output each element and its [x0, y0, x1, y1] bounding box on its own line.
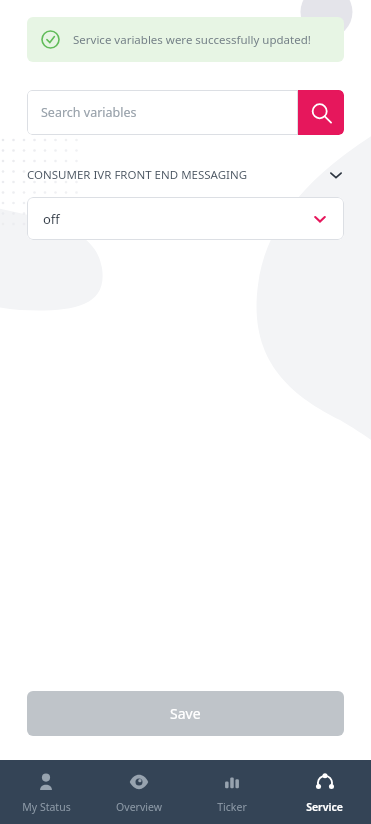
- button[interactable]: Search: [298, 90, 344, 135]
- staticText: Ticker: [217, 800, 247, 814]
- staticText: My Status: [22, 800, 71, 814]
- button[interactable]: Service: [278, 760, 371, 824]
- button[interactable]: My Status: [0, 760, 92, 824]
- staticText: Service: [306, 800, 343, 814]
- button[interactable]: Save: [27, 691, 344, 736]
- staticText: Service variables were successfully upda…: [73, 32, 311, 48]
- button[interactable]: Overview: [92, 760, 185, 824]
- staticText: Save: [170, 704, 201, 723]
- button[interactable]: Service variables were successfully upda…: [27, 17, 344, 62]
- staticText: Search variables: [41, 104, 137, 121]
- staticText: Overview: [116, 800, 162, 814]
- button[interactable]: CONSUMER IVR FRONT END MESSAGING: [27, 163, 344, 187]
- button[interactable]: Ticker: [185, 760, 278, 824]
- button[interactable]: off: [27, 197, 344, 240]
- staticText: CONSUMER IVR FRONT END MESSAGING: [27, 167, 248, 183]
- staticText: off: [43, 210, 60, 228]
- button[interactable]: Search variables: [27, 90, 344, 135]
